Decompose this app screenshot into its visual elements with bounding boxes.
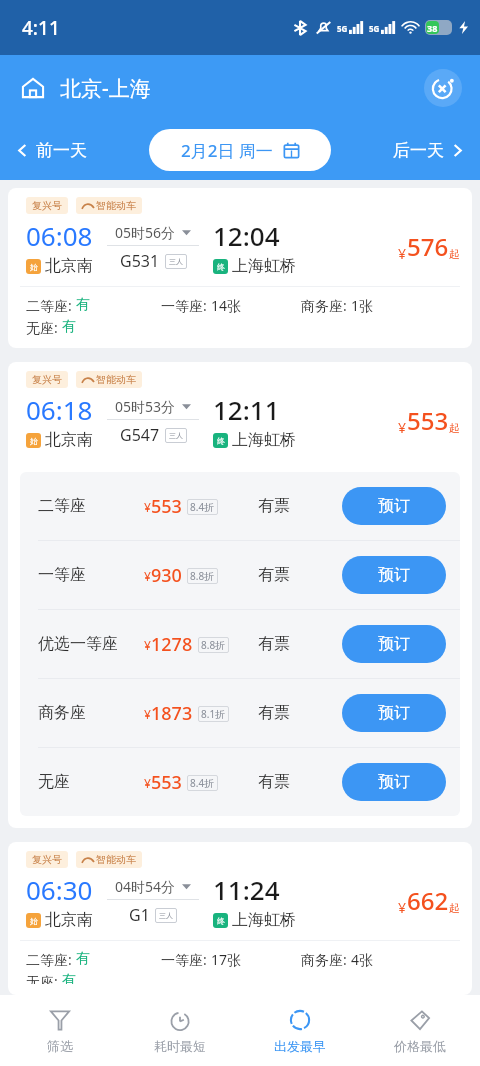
staticText: G547 — [120, 424, 160, 446]
button[interactable]: 前一天 — [10, 134, 93, 167]
staticText: 一等座: — [161, 296, 211, 315]
staticText: 北京南 — [45, 430, 93, 450]
staticText: 576 — [407, 230, 449, 263]
staticText: 三人 — [159, 911, 173, 920]
staticText: 预订 — [378, 634, 410, 654]
staticText: 智能动车 — [96, 373, 136, 386]
staticText: 12:11 — [213, 392, 280, 427]
staticText: 553 — [151, 770, 182, 795]
button[interactable]: 复兴号 — [8, 188, 472, 348]
staticText: 8.1折 — [201, 707, 226, 721]
staticText: 北京南 — [45, 910, 93, 930]
staticText: 1张 — [351, 296, 374, 315]
staticText: 复兴号 — [32, 853, 62, 866]
staticText: 北京-上海 — [60, 74, 151, 103]
staticText: 无座: — [26, 972, 62, 984]
button[interactable]: 价格最低 — [360, 995, 480, 1066]
staticText: ¥ — [144, 775, 151, 791]
button[interactable]: 出发最早 — [240, 995, 360, 1066]
staticText: ¥ — [144, 568, 151, 584]
staticText: 有 — [76, 296, 90, 314]
button[interactable]: 后一天 — [387, 134, 470, 167]
staticText: ¥ — [398, 244, 407, 263]
staticText: 06:18 — [26, 392, 93, 427]
staticText: 11:24 — [213, 872, 280, 907]
staticText: 预订 — [378, 703, 410, 723]
staticText: 始 — [30, 916, 38, 926]
staticText: 4张 — [351, 950, 374, 969]
staticText: 一等座 — [38, 565, 86, 585]
staticText: 有 — [62, 972, 76, 984]
staticText: 05时53分 — [115, 397, 176, 416]
staticText: 06:30 — [26, 872, 93, 907]
staticText: 12:04 — [213, 218, 280, 253]
staticText: 起 — [449, 901, 460, 915]
button[interactable]: 预订 — [342, 487, 446, 525]
staticText: 有票 — [258, 634, 290, 654]
staticText: 1278 — [151, 632, 193, 657]
staticText: 有票 — [258, 565, 290, 585]
staticText: 预订 — [378, 772, 410, 792]
button[interactable]: Home — [16, 71, 50, 105]
staticText: 智能动车 — [96, 853, 136, 866]
staticText: 始 — [30, 262, 38, 272]
staticText: 有票 — [258, 772, 290, 792]
staticText: 始 — [30, 436, 38, 446]
staticText: 筛选 — [47, 1038, 73, 1054]
staticText: ¥ — [144, 706, 151, 722]
staticText: 预订 — [378, 565, 410, 585]
staticText: 5G — [337, 23, 348, 34]
staticText: 复兴号 — [32, 373, 62, 386]
button[interactable]: 2月2日 周一 — [149, 129, 331, 171]
staticText: 14张 — [211, 296, 242, 315]
staticText: G1 — [129, 904, 150, 926]
staticText: 起 — [449, 247, 460, 261]
staticText: 上海虹桥 — [232, 256, 296, 276]
staticText: 耗时最短 — [154, 1038, 206, 1054]
button[interactable]: 复兴号 — [8, 842, 472, 995]
staticText: 三人 — [169, 431, 183, 440]
staticText: 05时56分 — [115, 223, 176, 242]
staticText: 553 — [407, 404, 449, 437]
staticText: 38 — [427, 22, 438, 34]
staticText: 起 — [449, 421, 460, 435]
staticText: ¥ — [144, 637, 151, 653]
staticText: 价格最低 — [394, 1038, 446, 1054]
staticText: 后一天 — [393, 140, 444, 161]
button[interactable]: 耗时最短 — [120, 995, 240, 1066]
button[interactable]: 预订 — [342, 625, 446, 663]
staticText: 有 — [62, 318, 76, 336]
staticText: 有票 — [258, 703, 290, 723]
staticText: ¥ — [144, 499, 151, 515]
staticText: 一等座: — [161, 950, 211, 969]
staticText: 2月2日 周一 — [181, 139, 273, 162]
staticText: 8.4折 — [190, 500, 215, 514]
button[interactable]: 预订 — [342, 694, 446, 732]
staticText: 三人 — [169, 257, 183, 266]
staticText: 智能动车 — [96, 199, 136, 212]
staticText: 8.8折 — [190, 569, 215, 583]
staticText: 4:11 — [22, 15, 60, 41]
staticText: 终 — [217, 436, 225, 446]
staticText: 662 — [407, 884, 449, 917]
staticText: ¥ — [398, 898, 407, 917]
staticText: 优选一等座 — [38, 634, 118, 654]
button[interactable]: Clear — [424, 69, 462, 107]
button[interactable]: 筛选 — [0, 995, 120, 1066]
staticText: G531 — [120, 250, 160, 272]
staticText: 前一天 — [36, 140, 87, 161]
staticText: 商务座: — [301, 296, 351, 315]
button[interactable]: 预订 — [342, 763, 446, 801]
staticText: 04时54分 — [115, 877, 176, 896]
staticText: 二等座: — [26, 296, 76, 315]
staticText: 06:08 — [26, 218, 93, 253]
staticText: 17张 — [211, 950, 242, 969]
button[interactable]: 预订 — [342, 556, 446, 594]
staticText: 二等座: — [26, 950, 76, 969]
staticText: 北京南 — [45, 256, 93, 276]
staticText: 无座 — [38, 772, 70, 792]
staticText: 上海虹桥 — [232, 430, 296, 450]
staticText: 终 — [217, 262, 225, 272]
staticText: 8.4折 — [190, 776, 215, 790]
staticText: 5G — [369, 23, 380, 34]
